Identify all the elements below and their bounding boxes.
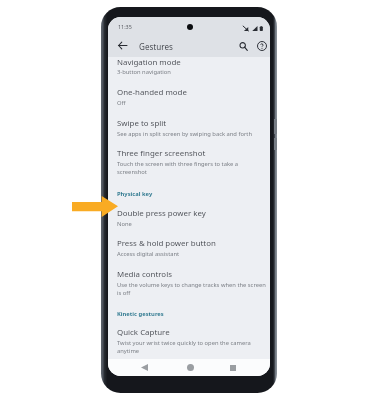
staticText: Touch the screen with three fingers to t… — [117, 160, 239, 168]
button[interactable]: Back — [136, 359, 152, 376]
button[interactable]: Three finger screenshot — [108, 142, 270, 181]
staticText: Three finger screenshot — [117, 148, 206, 159]
staticText: None — [117, 220, 132, 228]
button[interactable]: Search — [235, 38, 251, 54]
staticText: Double press power key — [117, 208, 206, 219]
button[interactable]: Recent apps — [225, 359, 241, 376]
button[interactable]: Help — [254, 38, 270, 54]
button[interactable]: Double press power key — [108, 201, 270, 232]
button[interactable]: Navigate up — [114, 37, 130, 53]
button[interactable]: Swipe to split — [108, 112, 270, 142]
staticText: Swipe to split — [117, 118, 167, 129]
staticText: screenshot — [117, 168, 147, 176]
staticText: Physical key — [117, 190, 153, 198]
button[interactable]: Press & hold power button — [108, 232, 270, 263]
staticText: 3-button navigation — [117, 68, 171, 76]
button[interactable]: Home — [182, 359, 198, 376]
staticText: Media controls — [117, 269, 172, 280]
staticText: Quick Capture — [117, 327, 170, 338]
staticText: One-handed mode — [117, 87, 187, 98]
button[interactable]: Quick Capture — [108, 321, 270, 359]
staticText: Kinetic gestures — [117, 310, 164, 318]
staticText: anytime — [117, 347, 140, 355]
staticText: 11:35 — [118, 23, 132, 30]
staticText: is off — [117, 289, 131, 297]
staticText: Navigation mode — [117, 57, 181, 68]
button[interactable]: Navigation mode — [108, 50, 270, 81]
staticText: Use the volume keys to change tracks whe… — [117, 281, 266, 289]
staticText: See apps in split screen by swiping back… — [117, 130, 253, 138]
staticText: Gestures — [139, 41, 173, 52]
staticText: Off — [117, 99, 126, 107]
staticText: Access digital assistant — [117, 250, 180, 258]
staticText: Press & hold power button — [117, 238, 216, 249]
staticText: Twist your wrist twice quickly to open t… — [117, 339, 251, 347]
button[interactable]: One-handed mode — [108, 81, 270, 112]
button[interactable]: Media controls — [108, 263, 270, 303]
